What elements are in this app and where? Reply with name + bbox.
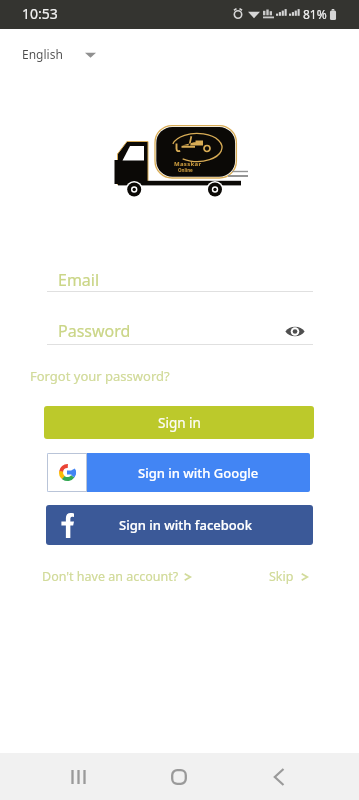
button[interactable]: Recent apps <box>45 759 111 794</box>
button[interactable]: Forgot your password? <box>27 364 173 388</box>
staticText: Email <box>58 269 100 291</box>
staticText: Password <box>58 320 131 342</box>
staticText: Forgot your password? <box>30 367 170 385</box>
button[interactable]: Sign in with Google <box>47 453 310 492</box>
button[interactable]: Sign in <box>44 406 314 439</box>
staticText: English <box>22 46 63 62</box>
staticText: Sign in <box>158 414 201 432</box>
button[interactable]: English <box>18 42 100 66</box>
staticText: Online <box>178 167 193 173</box>
staticText: Masskar <box>174 160 202 168</box>
button[interactable]: Home <box>146 759 211 794</box>
staticText: Don't have an account? <box>42 568 179 585</box>
staticText: 10:53 <box>22 4 58 23</box>
button[interactable]: Show password <box>284 320 306 342</box>
staticText: Skip <box>269 568 294 585</box>
staticText: Sign in with facebook <box>119 516 252 534</box>
button[interactable]: Skip <box>266 565 311 588</box>
staticText: 81% <box>303 6 327 22</box>
staticText: Sign in with Google <box>138 464 259 482</box>
button[interactable]: Back <box>246 759 312 794</box>
button[interactable]: Sign in with facebook <box>46 505 313 545</box>
button[interactable]: Don't have an account? <box>39 565 194 588</box>
